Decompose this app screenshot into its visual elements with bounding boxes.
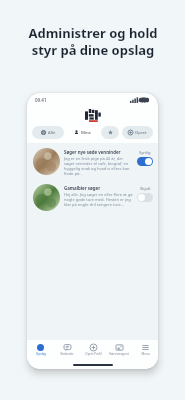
- staticText: Opslag: [36, 352, 46, 356]
- staticText: Jeg er en frisk pige på 42 år, der søger…: [64, 156, 134, 176]
- staticText: Kæresteagent: [109, 352, 129, 356]
- staticText: Administrer og hold styr på dine opslag: [28, 24, 158, 59]
- button[interactable]: Opret Profil: [80, 340, 106, 360]
- staticText: Søger nye søde venninder: [64, 149, 121, 155]
- staticText: Beskeder: [60, 352, 74, 356]
- staticText: Opret: [135, 130, 147, 136]
- button[interactable]: Opret: [122, 126, 153, 139]
- button[interactable]: Synlig til: [137, 157, 153, 166]
- staticText: Gamalbier søger: [64, 185, 101, 191]
- button[interactable]: Favoritter: [101, 126, 119, 139]
- button[interactable]: Beskeder: [54, 340, 80, 360]
- button[interactable]: Søger nye søde venninder: [27, 143, 158, 179]
- button[interactable]: Alle: [32, 126, 64, 139]
- staticText: Mine: [81, 130, 92, 136]
- staticText: Alle: [48, 130, 56, 136]
- button[interactable]: Skjult fra: [137, 193, 153, 202]
- staticText: Skjult: [140, 186, 151, 191]
- staticText: 09.41: [35, 97, 47, 103]
- staticText: Menu: [141, 352, 150, 356]
- staticText: Opret Profil: [85, 352, 102, 356]
- staticText: Hej alle. Jeg søger en eller flere at gå…: [64, 192, 134, 207]
- button[interactable]: Mine: [67, 126, 98, 139]
- button[interactable]: Opslag: [27, 340, 54, 360]
- staticText: Synlig: [139, 150, 151, 155]
- button[interactable]: Kæresteagent: [106, 340, 132, 360]
- button[interactable]: Menu: [132, 340, 158, 360]
- button[interactable]: Gamalbier søger: [27, 179, 158, 214]
